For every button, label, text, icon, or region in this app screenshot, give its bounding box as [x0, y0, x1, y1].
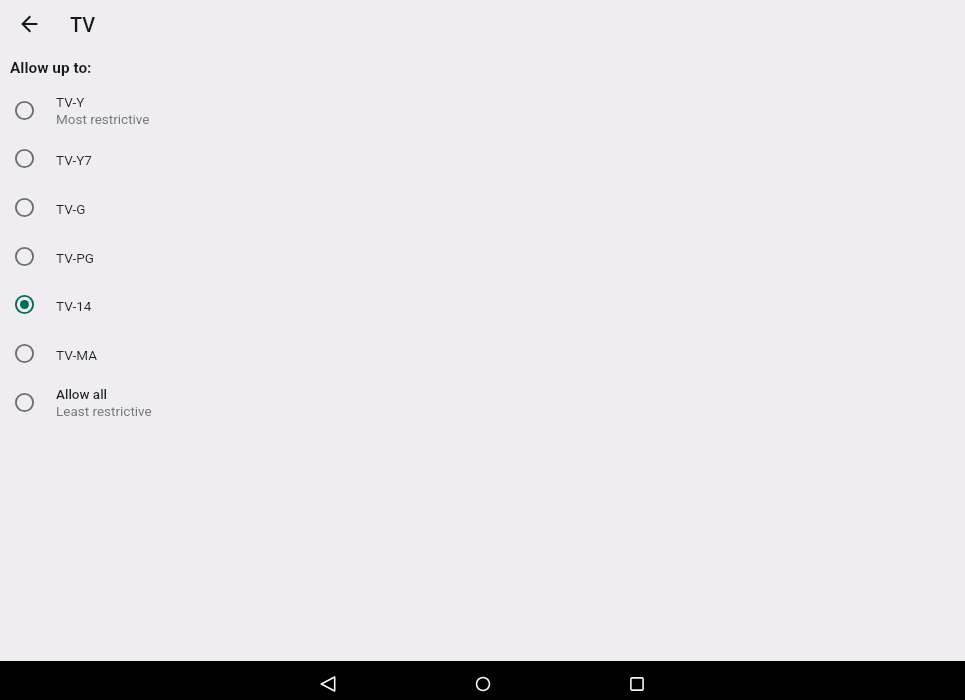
- button[interactable]: TV-Y: [0, 86, 965, 135]
- staticText: TV-Y7: [56, 152, 92, 168]
- button[interactable]: TV-G: [0, 183, 965, 232]
- button[interactable]: Allow all: [0, 378, 965, 427]
- button[interactable]: Home: [455, 667, 511, 700]
- staticText: Least restrictive: [56, 403, 152, 419]
- staticText: TV-14: [56, 298, 92, 314]
- staticText: TV-MA: [56, 347, 97, 363]
- button[interactable]: Recent apps: [609, 667, 665, 700]
- button[interactable]: TV-Y7: [0, 134, 965, 183]
- staticText: TV-G: [56, 201, 86, 217]
- staticText: Most restrictive: [56, 111, 150, 127]
- button[interactable]: TV-14: [0, 280, 965, 329]
- button[interactable]: TV-MA: [0, 329, 965, 378]
- button[interactable]: TV-PG: [0, 232, 965, 281]
- button[interactable]: Navigate up: [15, 9, 44, 38]
- staticText: Allow all: [56, 386, 108, 402]
- staticText: Allow up to:: [10, 59, 92, 77]
- button[interactable]: Back: [300, 667, 356, 700]
- staticText: TV: [70, 13, 96, 36]
- staticText: TV-Y: [56, 94, 85, 110]
- staticText: TV-PG: [56, 250, 94, 266]
